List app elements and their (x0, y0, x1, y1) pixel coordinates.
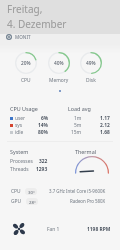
staticText: Fan 1 (47, 226, 60, 233)
other: Fan (11, 221, 27, 237)
staticText: Freitag, (7, 2, 43, 16)
staticText: 2.12 (100, 122, 110, 129)
staticText: Disk (86, 77, 96, 84)
button[interactable]: Processes (10, 158, 48, 165)
staticText: sys (15, 122, 23, 129)
staticText: 15m (71, 129, 82, 136)
staticText: user (15, 115, 26, 122)
button[interactable]: Threads (10, 166, 48, 173)
staticText: System (10, 148, 29, 155)
staticText: 1293 (36, 166, 48, 173)
button[interactable]: CPU (0, 187, 120, 195)
staticText: 1.17 (100, 115, 110, 122)
staticText: Radeon Pro 580X (70, 198, 106, 204)
button[interactable]: Fan (0, 218, 120, 240)
staticText: 30° (28, 189, 35, 195)
button[interactable]: Monit (6, 31, 120, 42)
staticText: Load avg (68, 105, 91, 112)
staticText: 28° (29, 199, 36, 205)
staticText: MONIT (15, 34, 31, 40)
other: Monit (6, 34, 12, 40)
staticText: CPU (21, 77, 31, 84)
staticText: 49% (86, 60, 96, 67)
staticText: CPU (11, 188, 21, 195)
staticText: Threads (10, 166, 29, 173)
staticText: Memory (49, 77, 69, 84)
button[interactable]: user (10, 115, 49, 122)
button[interactable]: 1m (68, 115, 110, 122)
staticText: 14% (38, 122, 49, 129)
staticText: Processes (10, 158, 33, 165)
staticText: 6% (41, 115, 49, 122)
staticText: 1m (74, 115, 82, 122)
button[interactable]: GPU (0, 197, 120, 205)
staticText: 1.68 (100, 129, 110, 136)
button[interactable]: 49% (80, 52, 102, 74)
staticText: 80% (38, 129, 49, 136)
staticText: 322 (39, 158, 48, 165)
staticText: CPU Usage (10, 105, 38, 112)
staticText: 1198 RPM (87, 226, 111, 233)
button[interactable]: idle (10, 129, 49, 136)
button[interactable]: 15m (68, 129, 110, 136)
button[interactable]: sys (10, 122, 49, 129)
button[interactable]: 40% (48, 52, 70, 74)
staticText: 40% (54, 60, 64, 67)
staticText: 4. Dezember (7, 17, 67, 31)
staticText: Thermal (75, 148, 97, 155)
staticText: GPU (11, 198, 22, 205)
button[interactable]: 5m (68, 122, 110, 129)
staticText: idle (15, 129, 24, 136)
button[interactable]: 20% (15, 52, 37, 74)
staticText: 5m (74, 122, 82, 129)
staticText: 20% (21, 60, 31, 67)
staticText: 3.7 GHz Intel Core i5-9600K (49, 188, 106, 194)
